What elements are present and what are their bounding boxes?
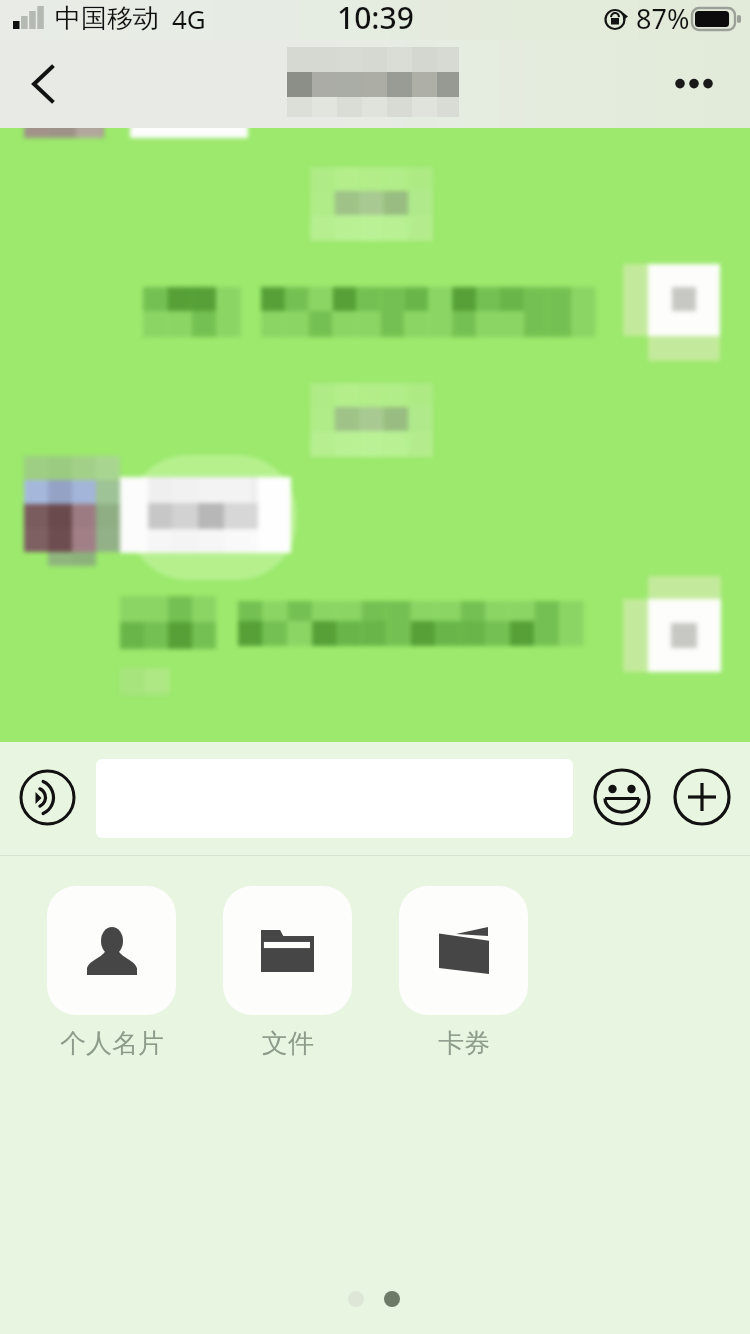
staticText: 4G [172,1,206,36]
staticText: 卡券 [438,1027,490,1060]
staticText: 中国移动 [55,2,159,35]
button[interactable]: Back [8,46,78,122]
staticText: 文件 [262,1027,314,1060]
button[interactable]: 个人名片 [47,886,176,1060]
button[interactable]: More functions [665,757,739,839]
button[interactable]: Emoji [585,757,659,839]
button[interactable]: 文件 [223,886,352,1060]
button[interactable]: More options [662,48,734,120]
button[interactable]: 卡券 [399,886,528,1060]
staticText: 10:39 [337,0,414,37]
staticText: 87% [636,0,690,37]
button[interactable]: Voice input [8,758,87,837]
staticText: 个人名片 [60,1027,164,1060]
